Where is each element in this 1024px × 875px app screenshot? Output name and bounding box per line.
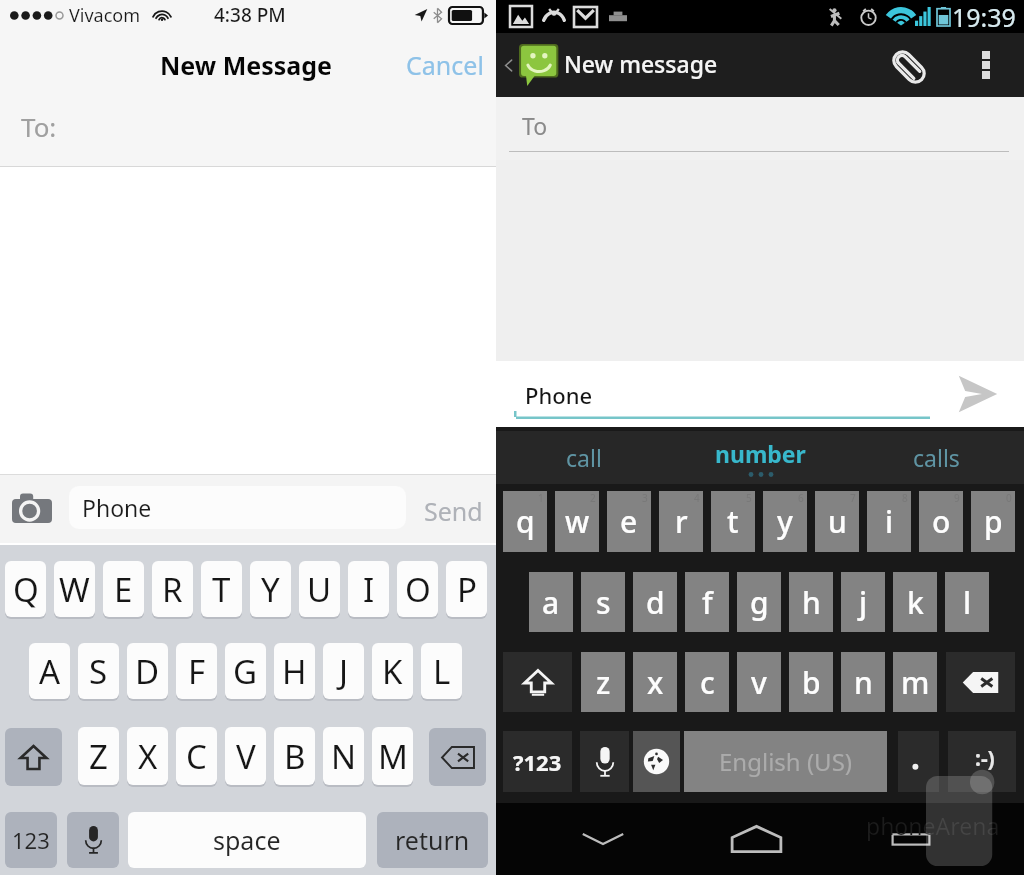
button[interactable]: X bbox=[127, 727, 168, 785]
button[interactable]: i bbox=[867, 491, 911, 552]
button[interactable]: c bbox=[685, 652, 729, 712]
button[interactable]: 123 bbox=[5, 812, 57, 868]
button[interactable]: Send bbox=[420, 490, 487, 532]
button[interactable]: Z bbox=[78, 727, 119, 785]
button[interactable]: u bbox=[815, 491, 859, 552]
button[interactable]: P bbox=[446, 561, 487, 617]
button[interactable]: Camera bbox=[8, 488, 56, 528]
button[interactable]: calls bbox=[848, 431, 1024, 484]
button[interactable]: To bbox=[496, 97, 1024, 160]
button[interactable]: Change language bbox=[633, 731, 680, 792]
button[interactable]: o bbox=[919, 491, 963, 552]
button[interactable]: To: bbox=[0, 95, 496, 167]
staticText: o bbox=[932, 501, 951, 542]
button[interactable]: Backspace bbox=[946, 652, 1015, 712]
button[interactable]: v bbox=[737, 652, 781, 712]
button[interactable]: g bbox=[737, 572, 781, 632]
staticText: 6 bbox=[798, 491, 804, 505]
staticText: To: bbox=[21, 109, 57, 144]
staticText: English (US) bbox=[719, 745, 853, 778]
button[interactable]: space bbox=[128, 812, 366, 868]
button[interactable]: B bbox=[274, 727, 315, 785]
staticText: e bbox=[620, 501, 638, 542]
button[interactable]: J bbox=[323, 643, 364, 699]
button[interactable]: Home bbox=[716, 811, 796, 867]
button[interactable]: Cancel bbox=[400, 44, 490, 86]
button[interactable]: ?123 bbox=[503, 731, 572, 792]
button[interactable]: R bbox=[152, 561, 193, 617]
button[interactable]: z bbox=[581, 652, 625, 712]
button[interactable]: Back bbox=[496, 33, 560, 81]
button[interactable]: Shift bbox=[503, 652, 572, 712]
staticText: B bbox=[284, 734, 306, 779]
button[interactable]: q bbox=[503, 491, 547, 552]
button[interactable]: F bbox=[176, 643, 217, 699]
button[interactable]: w bbox=[555, 491, 599, 552]
button[interactable]: K bbox=[372, 643, 413, 699]
button[interactable]: b bbox=[789, 652, 833, 712]
button[interactable]: h bbox=[789, 572, 833, 632]
button[interactable]: f bbox=[685, 572, 729, 632]
button[interactable]: m bbox=[893, 652, 937, 712]
button[interactable]: Attach bbox=[884, 45, 934, 89]
staticText: L bbox=[433, 649, 451, 694]
staticText: 123 bbox=[12, 825, 50, 855]
button[interactable]: n bbox=[841, 652, 885, 712]
button[interactable]: U bbox=[299, 561, 340, 617]
button[interactable]: y bbox=[763, 491, 807, 552]
button[interactable]: T bbox=[201, 561, 242, 617]
button[interactable]: Period bbox=[898, 731, 939, 792]
staticText: d bbox=[646, 582, 665, 623]
button[interactable]: O bbox=[397, 561, 438, 617]
button[interactable]: A bbox=[29, 643, 70, 699]
button[interactable]: Back bbox=[563, 811, 643, 867]
button[interactable]: d bbox=[633, 572, 677, 632]
button[interactable]: t bbox=[711, 491, 755, 552]
button[interactable]: s bbox=[581, 572, 625, 632]
staticText: f bbox=[702, 582, 713, 623]
button[interactable]: H bbox=[274, 643, 315, 699]
staticText: Q bbox=[13, 567, 39, 612]
button[interactable]: Y bbox=[250, 561, 291, 617]
button[interactable]: S bbox=[78, 643, 119, 699]
button[interactable]: Voice input bbox=[67, 812, 119, 868]
button[interactable]: Shift bbox=[5, 728, 62, 786]
button[interactable]: e bbox=[607, 491, 651, 552]
button[interactable]: Voice input bbox=[580, 731, 629, 792]
button[interactable]: Emoji bbox=[948, 731, 1016, 792]
button[interactable]: return bbox=[377, 812, 488, 868]
staticText: b bbox=[802, 662, 821, 703]
button[interactable]: p bbox=[971, 491, 1015, 552]
button[interactable]: N bbox=[323, 727, 364, 785]
button[interactable]: r bbox=[659, 491, 703, 552]
button[interactable]: L bbox=[421, 643, 462, 699]
button[interactable]: Q bbox=[5, 561, 46, 617]
button[interactable]: Phone bbox=[69, 486, 406, 529]
button[interactable]: W bbox=[54, 561, 95, 617]
button[interactable]: C bbox=[176, 727, 217, 785]
staticText: 4 bbox=[694, 491, 700, 505]
staticText: i bbox=[885, 501, 894, 542]
button[interactable]: k bbox=[893, 572, 937, 632]
button[interactable]: G bbox=[225, 643, 266, 699]
button[interactable]: Recent apps bbox=[871, 811, 951, 867]
staticText: ?123 bbox=[513, 747, 562, 777]
staticText: u bbox=[828, 501, 847, 542]
staticText: g bbox=[750, 582, 769, 623]
button[interactable]: Send bbox=[951, 371, 1005, 417]
button[interactable]: English (US) bbox=[684, 731, 887, 792]
button[interactable]: I bbox=[348, 561, 389, 617]
button[interactable]: M bbox=[372, 727, 413, 785]
button[interactable]: V bbox=[225, 727, 266, 785]
button[interactable]: l bbox=[945, 572, 989, 632]
button[interactable]: More options bbox=[968, 43, 1004, 87]
button[interactable]: a bbox=[529, 572, 573, 632]
button[interactable]: j bbox=[841, 572, 885, 632]
button[interactable]: D bbox=[127, 643, 168, 699]
button[interactable]: E bbox=[103, 561, 144, 617]
button[interactable]: Backspace bbox=[429, 728, 486, 786]
button[interactable]: x bbox=[633, 652, 677, 712]
button[interactable]: number bbox=[672, 431, 848, 484]
button[interactable]: call bbox=[496, 431, 672, 484]
